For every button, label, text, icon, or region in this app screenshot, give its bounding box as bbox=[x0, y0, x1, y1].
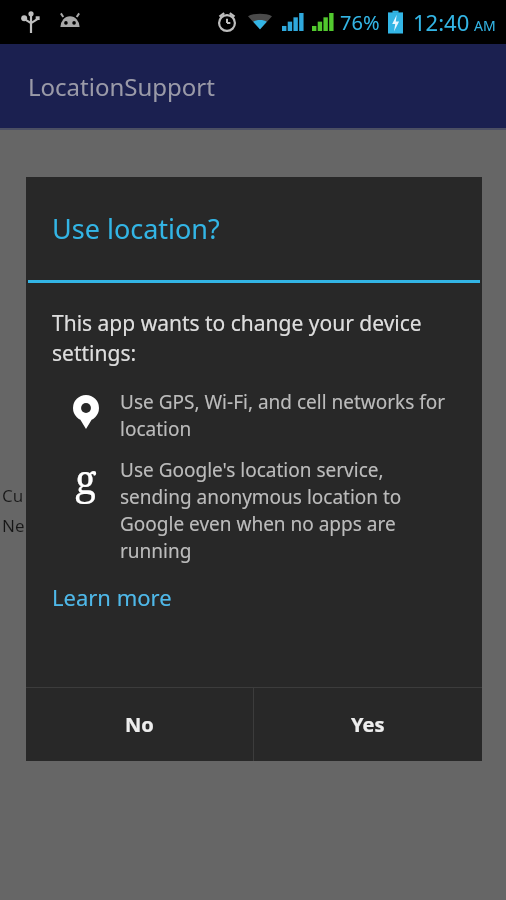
button[interactable]: No bbox=[26, 688, 253, 761]
staticText: AM bbox=[474, 16, 496, 35]
button[interactable]: Yes bbox=[254, 688, 482, 761]
staticText: No bbox=[125, 711, 154, 738]
staticText: LocationSupport bbox=[28, 70, 215, 103]
staticText: Yes bbox=[351, 711, 385, 738]
staticText: 76% bbox=[340, 9, 380, 36]
staticText: Use location? bbox=[52, 210, 220, 247]
staticText: 12:40 bbox=[413, 7, 470, 37]
button[interactable]: Learn more bbox=[52, 582, 172, 612]
staticText: Learn more bbox=[52, 582, 172, 612]
other: Location pin bbox=[73, 395, 99, 429]
staticText: Cu bbox=[2, 484, 24, 507]
staticText: Use GPS, Wi-Fi, and cell networks for lo… bbox=[120, 389, 458, 442]
staticText: This app wants to change your device set… bbox=[52, 309, 454, 367]
staticText: Ne bbox=[2, 514, 25, 537]
staticText: g bbox=[75, 451, 97, 505]
staticText: Use Google's location service, sending a… bbox=[120, 457, 458, 564]
